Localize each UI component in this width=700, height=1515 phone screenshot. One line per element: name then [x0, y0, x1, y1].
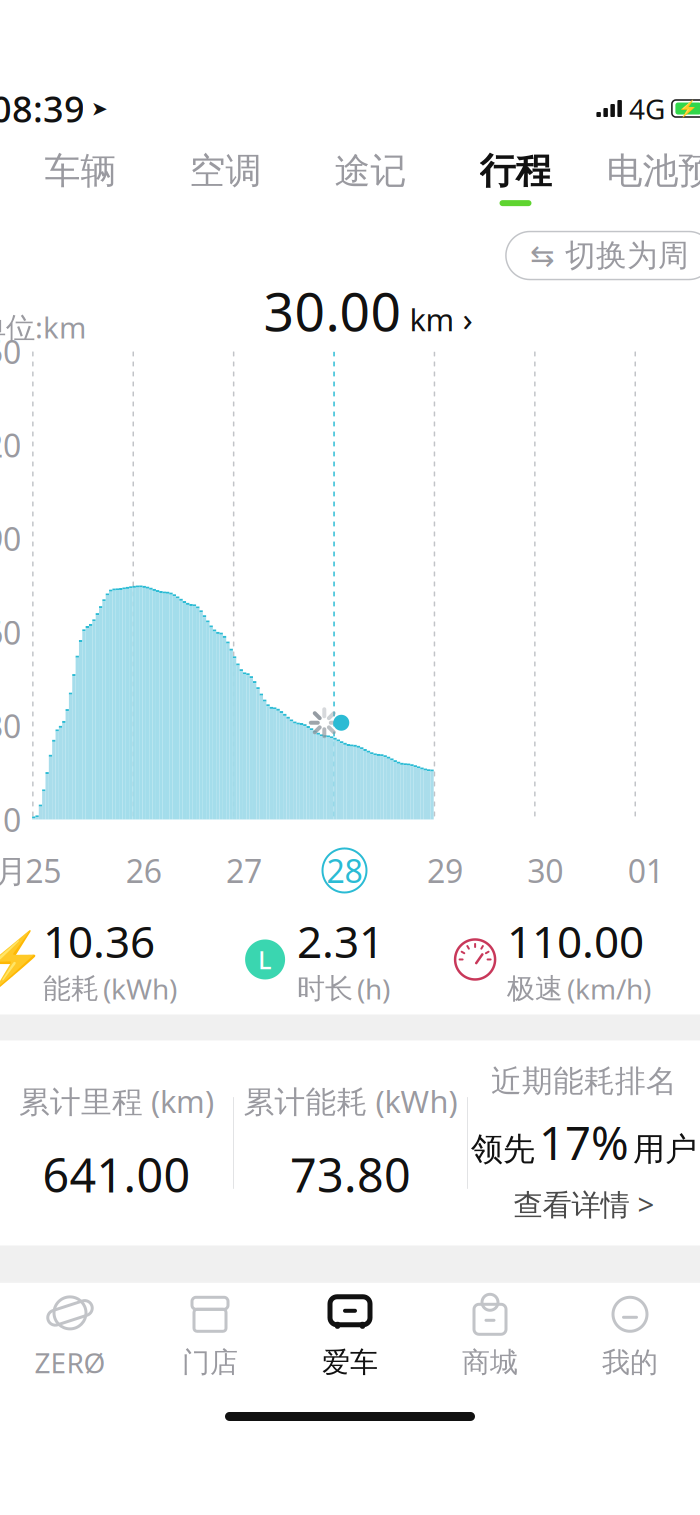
staticText: 25 [25, 849, 61, 892]
staticText: 28 [326, 849, 362, 892]
button[interactable]: 门店 [140, 1288, 280, 1384]
staticText: 30.00 [263, 275, 401, 346]
staticText: 商城 [462, 1345, 518, 1380]
button[interactable]: 爱车 [280, 1288, 420, 1384]
staticText: 30 [527, 849, 563, 892]
staticText: km [409, 299, 454, 340]
staticText: 时长 [297, 971, 353, 1006]
staticText: 领先 [471, 1130, 535, 1169]
staticText: (kWh) [103, 970, 177, 1007]
staticText: 73.80 [290, 1143, 411, 1205]
button[interactable]: 行程 [443, 147, 588, 207]
button[interactable]: 我的 [560, 1288, 700, 1384]
staticText: 车辆 [44, 149, 116, 193]
staticText: 120 [0, 424, 21, 466]
button[interactable]: ⇆ [506, 231, 700, 279]
staticText: › [462, 296, 472, 340]
staticText: 累计里程 (km) [19, 1081, 214, 1121]
staticText: 110.00 [507, 912, 644, 970]
staticText: 途记 [334, 149, 406, 193]
button[interactable]: 空调 [153, 147, 298, 207]
staticText: 极速 [507, 971, 563, 1006]
staticText: 2.31 [297, 912, 384, 970]
staticText: 空调 [189, 149, 261, 193]
staticText: ⚡ [678, 99, 698, 118]
staticText: 我的 [602, 1345, 658, 1380]
staticText: 电池预 [606, 149, 700, 193]
staticText: 切换为周 [565, 237, 689, 274]
staticText: 27 [226, 849, 262, 892]
staticText: 26 [126, 849, 162, 892]
staticText: 08:39 [0, 85, 85, 132]
staticText: 60 [0, 611, 21, 653]
button[interactable]: 途记 [298, 147, 443, 207]
staticText: (km/h) [567, 970, 651, 1007]
staticText: ZERØ [34, 1344, 105, 1381]
staticText: 90 [0, 517, 21, 560]
staticText: 行程 [479, 149, 551, 193]
staticText: 9月 [0, 849, 27, 892]
button[interactable]: 近期能耗排名 [468, 1063, 700, 1223]
staticText: ➤ [91, 97, 108, 120]
staticText: 17% [539, 1112, 629, 1172]
staticText: 4G [629, 90, 665, 127]
staticText: 能耗 [43, 971, 99, 1006]
staticText: ⚡ [0, 929, 46, 990]
button[interactable]: ZERØ [0, 1288, 140, 1384]
staticText: 01 [628, 849, 664, 892]
staticText: (h) [357, 970, 390, 1007]
staticText: 10.36 [43, 912, 155, 970]
staticText: 近期能耗排名 [491, 1063, 677, 1100]
staticText: 150 [0, 330, 21, 373]
staticText: 30 [0, 705, 21, 747]
staticText: ⇆ [530, 239, 555, 272]
staticText: L [258, 943, 272, 976]
button[interactable]: 电池预 [588, 147, 700, 207]
staticText: 单位:km [0, 307, 86, 346]
staticText: 29 [427, 849, 463, 892]
staticText: 用户 [633, 1130, 697, 1169]
staticText: 爱车 [322, 1345, 378, 1380]
staticText: 查看详情 > [513, 1184, 654, 1223]
button[interactable]: 商城 [420, 1288, 560, 1384]
button[interactable]: 车辆 [8, 147, 153, 207]
staticText: 门店 [182, 1345, 238, 1380]
staticText: 641.00 [42, 1143, 190, 1205]
staticText: 0 [3, 798, 21, 841]
staticText: 累计能耗 (kWh) [243, 1081, 457, 1121]
